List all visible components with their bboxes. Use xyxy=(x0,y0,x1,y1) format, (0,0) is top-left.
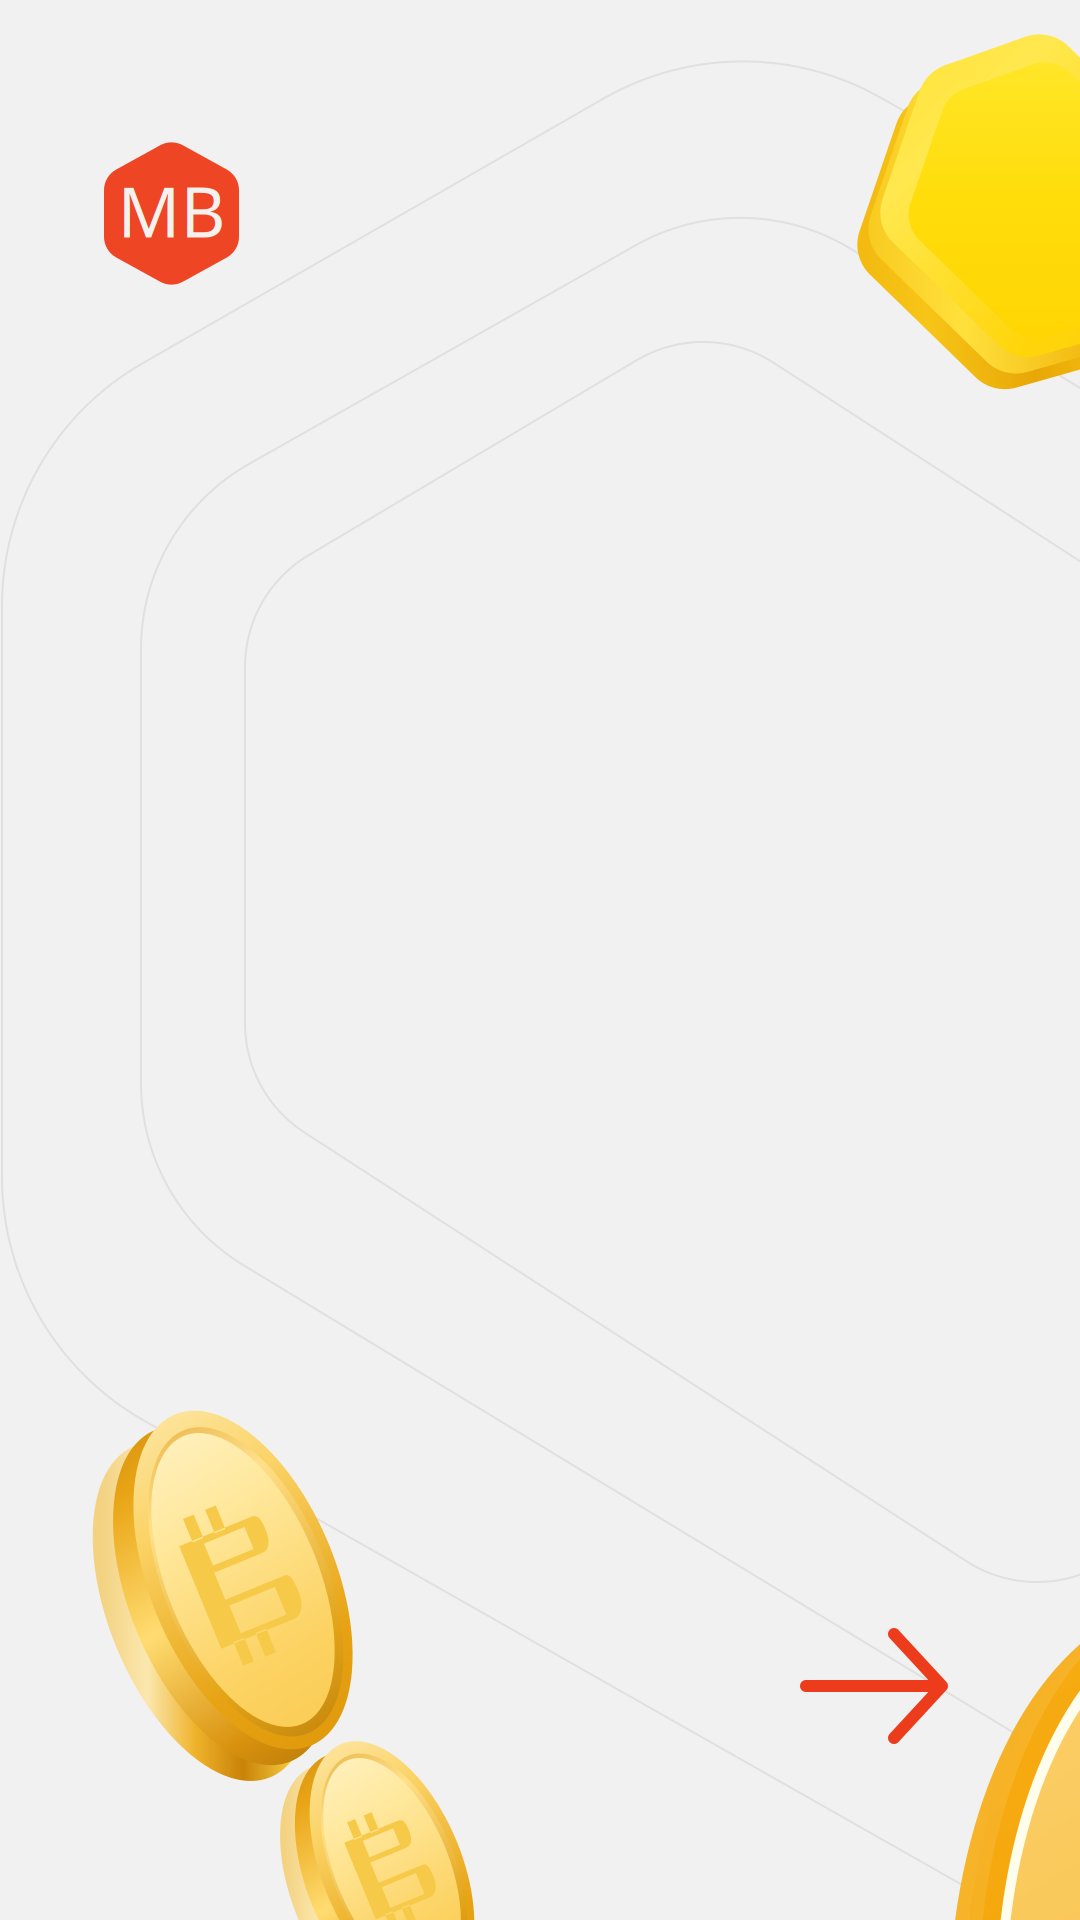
staticText: MB xyxy=(117,164,225,257)
button[interactable]: MB xyxy=(104,139,239,288)
button[interactable]: Continue xyxy=(798,1628,950,1744)
